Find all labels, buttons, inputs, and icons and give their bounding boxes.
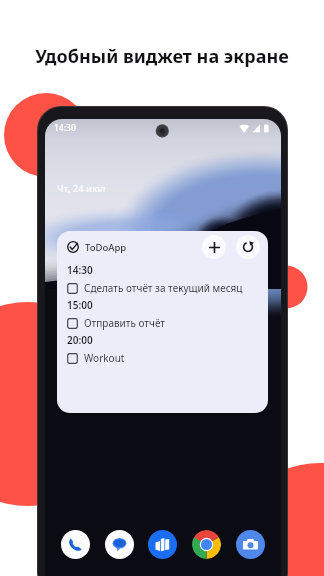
- staticText: ToDoApp: [85, 241, 127, 254]
- button[interactable]: Chrome: [192, 530, 221, 559]
- button[interactable]: Сделать отчёт за текущий месяц: [67, 281, 260, 295]
- button[interactable]: Workout: [67, 351, 260, 365]
- staticText: Workout: [84, 351, 125, 365]
- staticText: 15:00: [67, 298, 93, 312]
- staticText: Чт, 24 июл: [57, 182, 106, 195]
- staticText: 14:30: [67, 263, 93, 277]
- button[interactable]: Отправить отчёт: [67, 316, 260, 330]
- staticText: Отправить отчёт: [84, 316, 165, 330]
- button[interactable]: Add task: [202, 235, 226, 259]
- button[interactable]: Phone: [61, 530, 90, 559]
- button[interactable]: Camera: [236, 530, 265, 559]
- button[interactable]: Messages: [105, 530, 134, 559]
- staticText: Удобный виджет на экране: [0, 44, 324, 69]
- button[interactable]: Refresh: [236, 235, 260, 259]
- staticText: 20:00: [67, 333, 93, 347]
- button[interactable]: Play Books: [148, 530, 177, 559]
- staticText: Сделать отчёт за текущий месяц: [84, 281, 243, 295]
- staticText: 14:30: [54, 122, 76, 134]
